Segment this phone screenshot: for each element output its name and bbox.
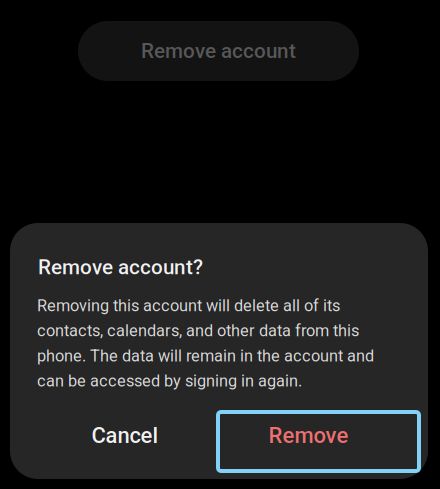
button[interactable]: Remove account [78,21,359,81]
button[interactable]: Cancel [63,405,187,466]
staticText: Removing this account will delete all of… [37,296,374,391]
staticText: Cancel [91,423,158,448]
staticText: Remove [268,423,348,448]
staticText: Remove account [141,39,296,63]
button[interactable]: Remove [218,412,419,471]
staticText: Remove account? [38,255,203,279]
